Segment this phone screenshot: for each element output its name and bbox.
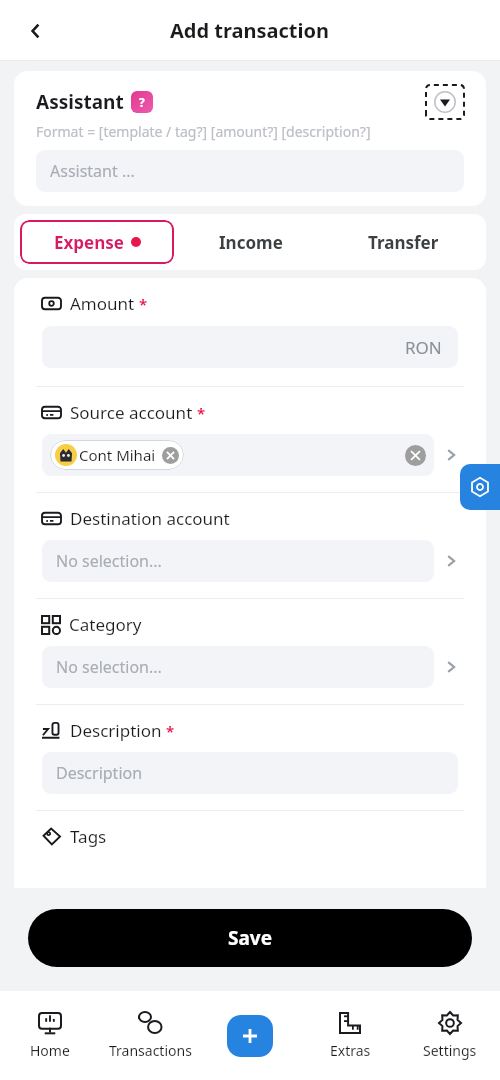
button[interactable]: Cont Mihai xyxy=(42,434,434,476)
button[interactable]: Help xyxy=(131,91,153,113)
staticText: Transactions xyxy=(109,1041,192,1060)
button[interactable]: Save xyxy=(28,909,472,967)
staticText: Transfer xyxy=(368,231,439,254)
button[interactable]: Cont Mihai xyxy=(55,440,179,470)
staticText: Income xyxy=(219,231,283,254)
staticText: Tags xyxy=(70,825,107,848)
button[interactable]: Expense xyxy=(20,220,174,264)
staticText: No selection... xyxy=(56,656,162,678)
staticText: Add transaction xyxy=(170,17,330,44)
staticText: Extras xyxy=(330,1041,371,1060)
button[interactable]: Add xyxy=(227,1015,273,1057)
button[interactable]: No selection... xyxy=(42,646,434,688)
staticText: Amount xyxy=(70,292,135,315)
button[interactable]: Expand assistant xyxy=(426,85,464,119)
staticText: * xyxy=(193,403,206,423)
staticText: ? xyxy=(139,94,145,110)
button[interactable]: Income xyxy=(174,220,327,264)
staticText: Destination account xyxy=(70,507,230,530)
staticText: Settings xyxy=(423,1041,477,1060)
staticText: Assistant ... xyxy=(50,160,135,182)
button[interactable]: Assistant ... xyxy=(36,150,464,192)
staticText: Description xyxy=(56,762,143,784)
button[interactable]: No selection... xyxy=(42,540,434,582)
staticText: Cont Mihai xyxy=(79,445,156,465)
button[interactable]: Extras xyxy=(300,991,400,1080)
staticText: Description xyxy=(70,719,162,742)
staticText: Category xyxy=(69,613,142,636)
staticText: No selection... xyxy=(56,550,162,572)
staticText: Home xyxy=(30,1041,70,1060)
staticText: * xyxy=(162,721,175,741)
staticText: Expense xyxy=(54,231,124,254)
button[interactable]: Clear xyxy=(162,447,179,464)
staticText: RON xyxy=(405,336,442,359)
button[interactable]: Back xyxy=(14,9,58,53)
button[interactable]: RON xyxy=(42,326,458,368)
button[interactable]: Settings xyxy=(400,991,500,1080)
staticText: Source account xyxy=(70,401,193,424)
button[interactable]: Transfer xyxy=(327,220,480,264)
staticText: Format = [template / tag?] [amount?] [de… xyxy=(36,122,371,141)
button[interactable]: Description xyxy=(42,752,458,794)
staticText: Assistant xyxy=(36,89,124,115)
button[interactable]: Clear xyxy=(405,445,426,466)
staticText: Save xyxy=(228,925,273,951)
button[interactable]: Home xyxy=(0,991,100,1080)
button[interactable]: Transactions xyxy=(100,991,200,1080)
button[interactable]: Quick action xyxy=(460,464,500,510)
staticText: * xyxy=(135,294,148,314)
